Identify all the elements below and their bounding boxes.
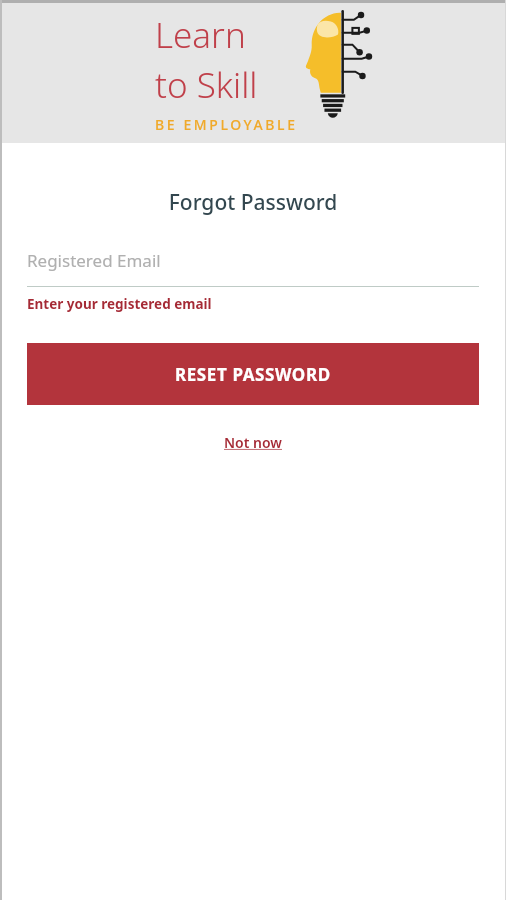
staticText: Enter your registered email xyxy=(27,295,212,313)
button[interactable]: Registered Email xyxy=(27,249,479,287)
staticText: BE EMPLOYABLE xyxy=(155,115,298,134)
staticText: Not now xyxy=(224,433,282,452)
button[interactable]: Not now xyxy=(218,427,288,458)
staticText: RESET PASSWORD xyxy=(175,363,331,386)
staticText: Registered Email xyxy=(27,249,161,272)
staticText: Learn xyxy=(155,11,246,59)
staticText: to Skill xyxy=(155,61,258,109)
staticText: Forgot Password xyxy=(0,188,506,217)
button[interactable]: RESET PASSWORD xyxy=(27,343,479,405)
